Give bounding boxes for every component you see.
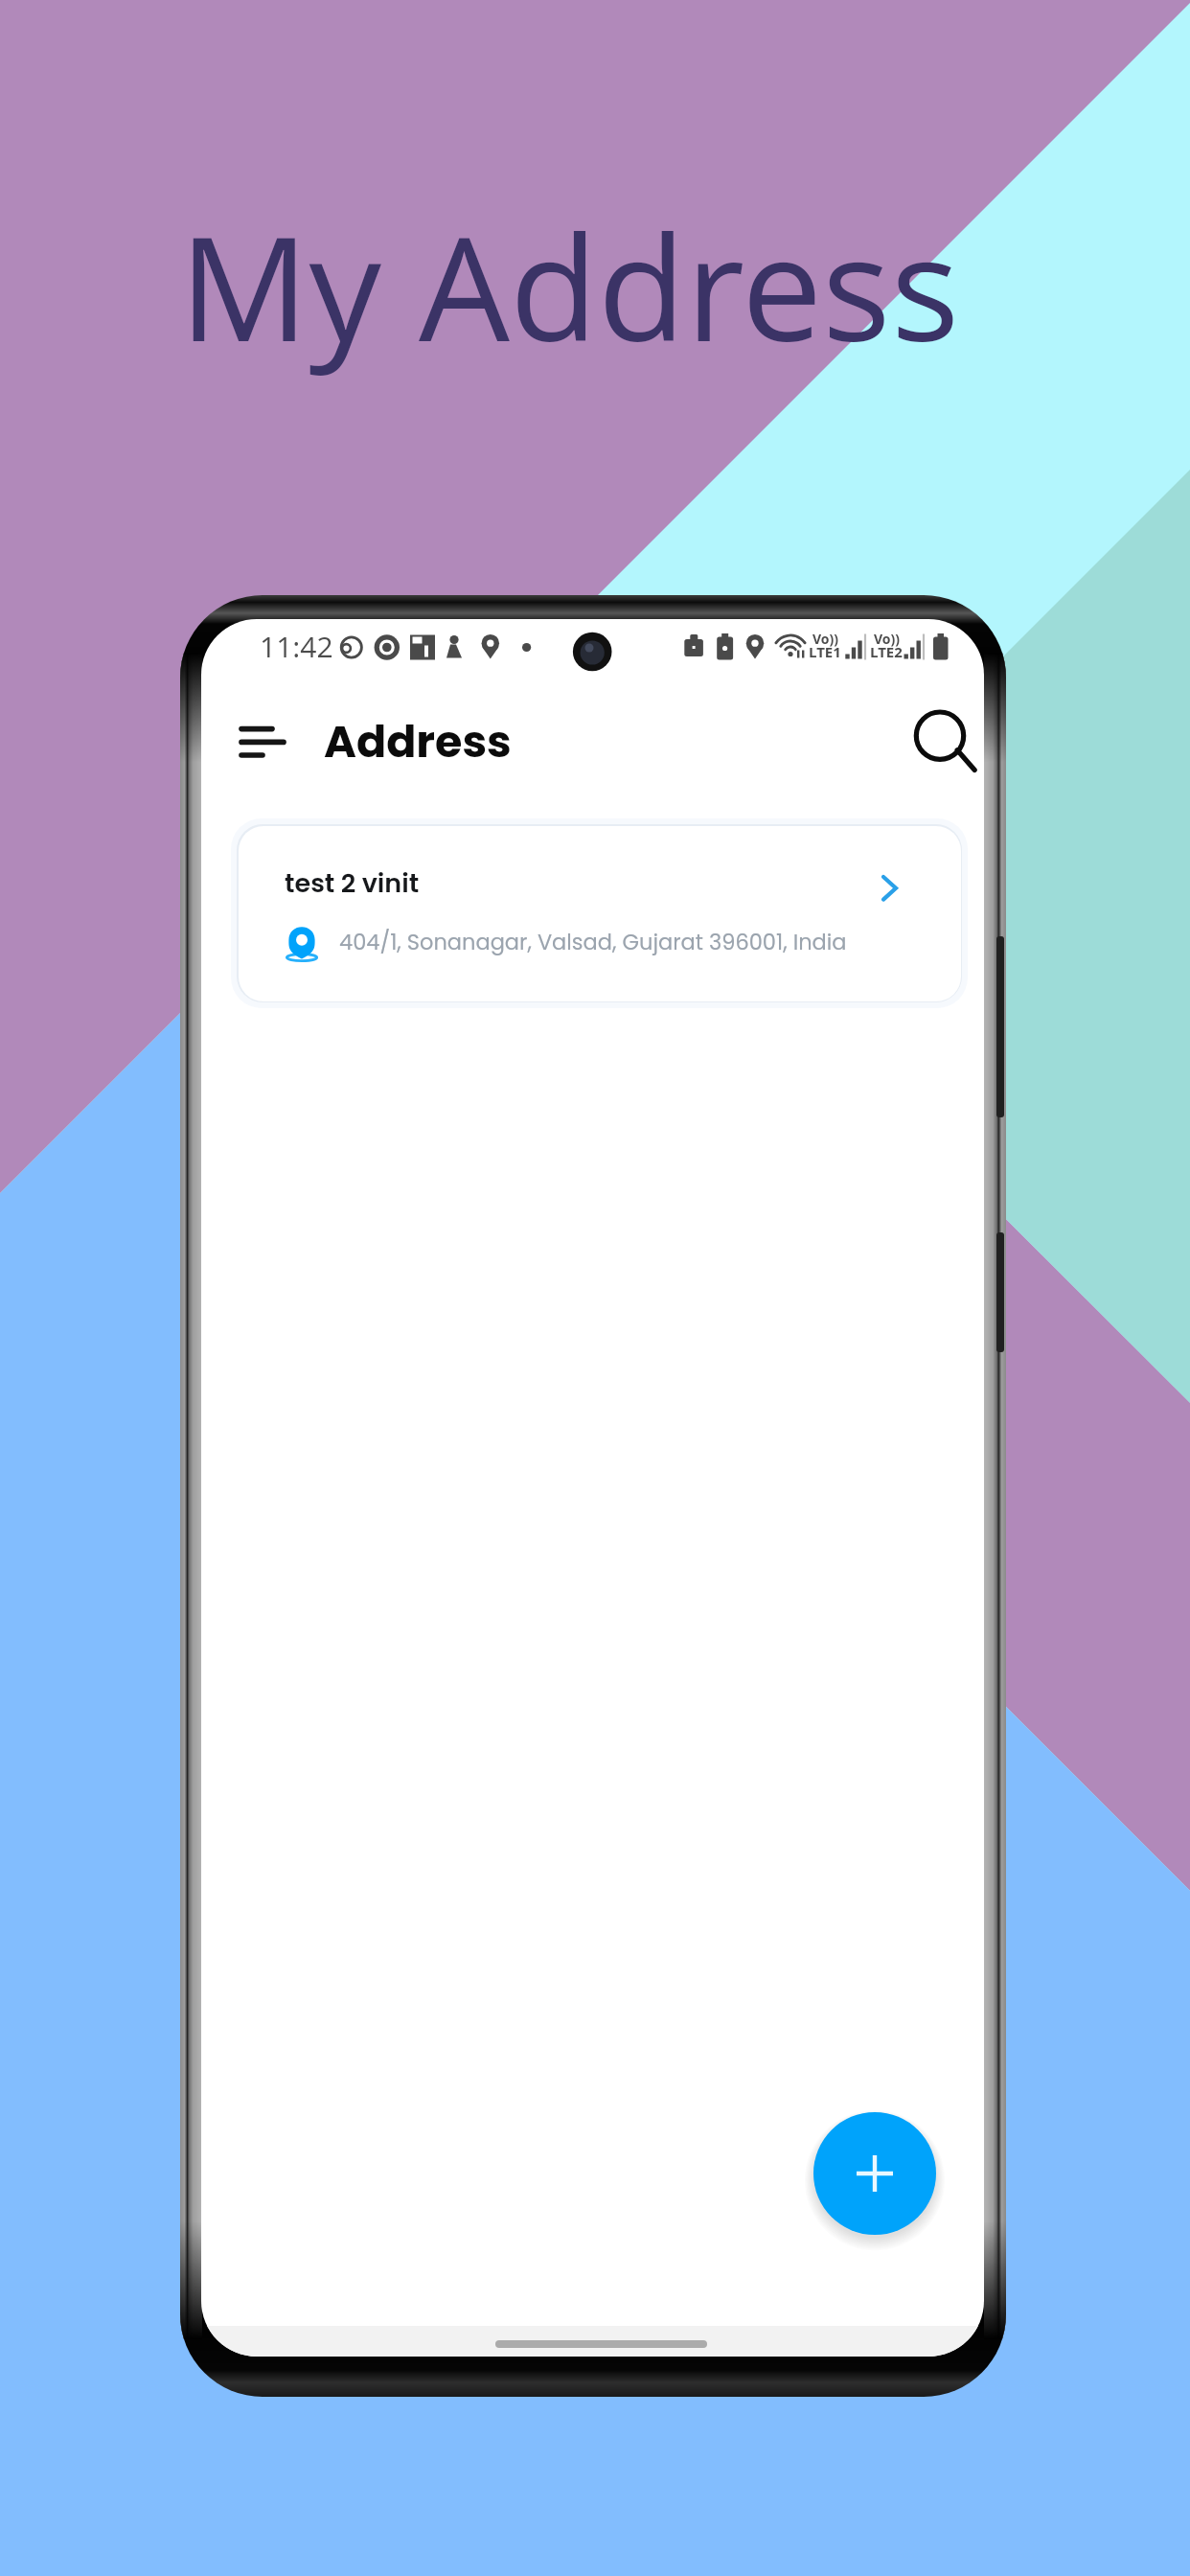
staticText: Address [324, 711, 512, 772]
staticText: 404/1, Sonanagar, Valsad, Gujarat 396001… [339, 927, 847, 956]
staticText: LTE2 [870, 642, 903, 661]
staticText: Vo)) [812, 630, 838, 648]
button[interactable]: Open navigation menu [218, 707, 305, 774]
staticText: 11:42 [260, 627, 333, 666]
button[interactable]: test 2 vinit [239, 826, 961, 1001]
button[interactable]: Search [901, 696, 984, 780]
staticText: Vo)) [874, 630, 900, 648]
button[interactable]: Add new address [813, 2112, 936, 2235]
staticText: My Address [179, 188, 960, 383]
staticText: test 2 vinit [285, 865, 420, 902]
staticText: LTE1 [809, 642, 841, 661]
